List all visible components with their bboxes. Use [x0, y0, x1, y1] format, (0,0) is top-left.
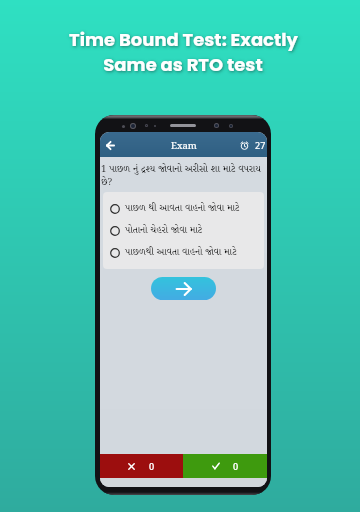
staticText: 1 પાછળ નું દ્રશ્ય જોવાનો અરીસો શા માટે વ…: [101, 162, 266, 190]
staticText: Time Bound Test: Exactly: [69, 27, 298, 52]
staticText: Same as RTO test: [103, 52, 263, 77]
button[interactable]: Next question: [151, 277, 216, 300]
button[interactable]: પોતાનો ચેહરો જોવા માટે: [103, 220, 264, 242]
button[interactable]: પાછળ થી આવતા વાહનો જોવા માટે: [103, 198, 264, 220]
staticText: પાછળથી આવતા વાહનો જોવા માટે: [125, 246, 237, 260]
staticText: 0: [149, 460, 155, 472]
button[interactable]: પાછળથી આવતા વાહનો જોવા માટે: [103, 242, 264, 264]
button[interactable]: Timer 27: [240, 139, 266, 151]
button[interactable]: 0: [183, 454, 267, 478]
staticText: 27: [255, 139, 266, 151]
staticText: પાછળ થી આવતા વાહનો જોવા માટે: [125, 202, 240, 216]
button[interactable]: Back: [102, 137, 118, 153]
button[interactable]: 0: [100, 454, 183, 478]
staticText: 0: [233, 460, 239, 472]
staticText: Exam: [171, 139, 197, 152]
staticText: પોતાનો ચેહરો જોવા માટે: [125, 224, 203, 238]
